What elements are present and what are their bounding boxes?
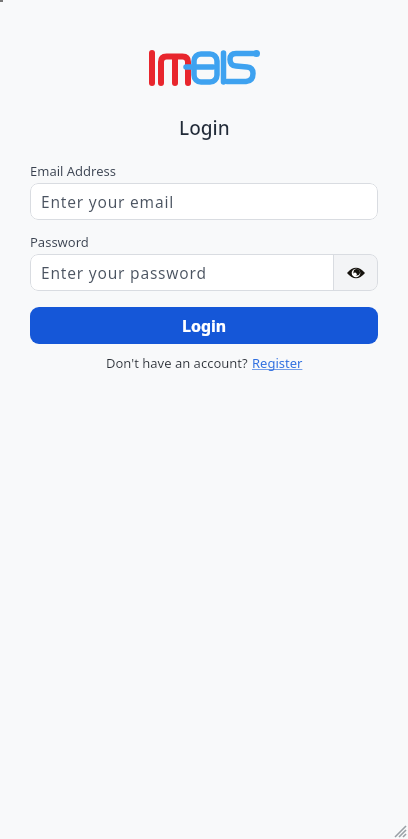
staticText: Register [252,354,303,372]
button[interactable] [334,254,378,291]
staticText: Password [30,233,89,251]
staticText: Don't have an account? [106,354,252,372]
button[interactable]: Register [252,354,303,372]
staticText: Login [179,115,230,141]
button[interactable]: Enter your password [30,254,333,291]
staticText: Enter your password [41,262,207,283]
staticText: Email Address [30,162,116,180]
button[interactable]: Login [30,307,378,344]
staticText: Enter your email [41,191,174,212]
button[interactable]: Enter your email [30,183,378,220]
staticText: Login [182,315,227,337]
